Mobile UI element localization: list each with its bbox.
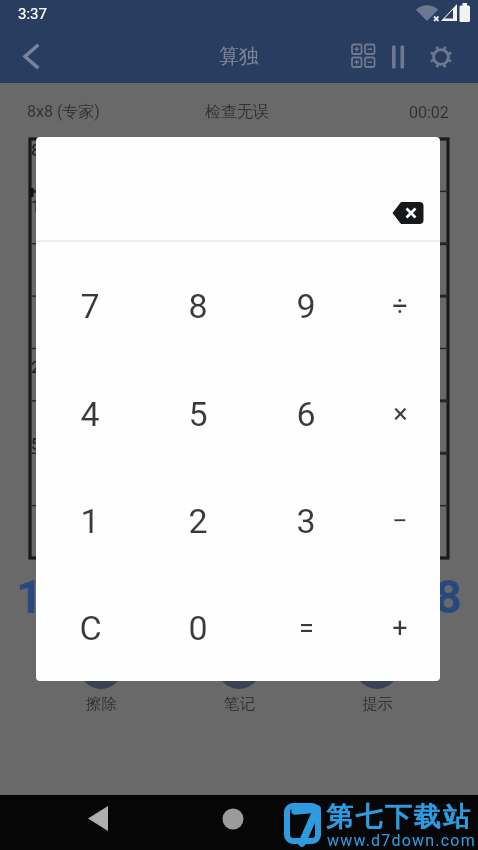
- button[interactable]: ×: [360, 360, 440, 467]
- button[interactable]: [350, 42, 378, 72]
- staticText: C: [79, 608, 102, 648]
- staticText: 提示: [362, 694, 393, 714]
- button[interactable]: [213, 795, 253, 843]
- staticText: 2: [31, 357, 41, 377]
- button[interactable]: [386, 42, 410, 72]
- staticText: 2: [76, 569, 103, 624]
- staticText: 7: [375, 569, 402, 624]
- staticText: ÷: [392, 290, 408, 322]
- button[interactable]: 1: [36, 467, 144, 574]
- button[interactable]: 5: [144, 360, 252, 467]
- staticText: 1: [16, 569, 43, 624]
- button[interactable]: [427, 43, 455, 71]
- staticText: 5: [188, 394, 208, 434]
- staticText: 1: [80, 501, 100, 541]
- button[interactable]: 0: [144, 574, 252, 681]
- staticText: 6: [296, 394, 316, 434]
- staticText: 4: [196, 569, 223, 624]
- staticText: 笔记: [224, 694, 255, 714]
- button[interactable]: 8: [144, 252, 252, 360]
- staticText: =: [299, 612, 314, 644]
- staticText: 8: [435, 569, 462, 624]
- button[interactable]: ÷: [360, 252, 440, 360]
- staticText: 擦除: [86, 694, 117, 714]
- staticText: 9: [296, 286, 316, 326]
- staticText: −: [392, 505, 408, 537]
- button[interactable]: 3: [252, 467, 360, 574]
- staticText: 3: [296, 501, 316, 541]
- button[interactable]: C: [36, 574, 144, 681]
- staticText: 8: [31, 140, 41, 160]
- button[interactable]: [390, 200, 426, 226]
- button[interactable]: 2: [144, 467, 252, 574]
- button[interactable]: [80, 798, 120, 846]
- staticText: 00:02: [409, 103, 449, 122]
- staticText: 0: [188, 608, 208, 648]
- staticText: 第七下载站: [325, 800, 471, 834]
- staticText: www.d7down.com: [327, 831, 476, 850]
- button[interactable]: 4: [36, 360, 144, 467]
- button[interactable]: 9: [252, 252, 360, 360]
- staticText: 7: [80, 286, 100, 326]
- staticText: 4: [80, 394, 100, 434]
- staticText: +: [392, 612, 408, 644]
- staticText: 8x8 (专家): [27, 102, 100, 122]
- staticText: 3:37: [18, 5, 47, 23]
- staticText: ×: [393, 398, 408, 430]
- staticText: 1: [31, 196, 41, 216]
- staticText: 检查无误: [205, 102, 269, 122]
- staticText: 8: [188, 286, 208, 326]
- staticText: 5: [31, 434, 41, 454]
- staticText: 2: [188, 501, 208, 541]
- button[interactable]: 6: [252, 360, 360, 467]
- staticText: 算独: [219, 44, 259, 69]
- button[interactable]: 7: [36, 252, 144, 360]
- button[interactable]: =: [252, 574, 360, 681]
- button[interactable]: +: [360, 574, 440, 681]
- button[interactable]: [14, 42, 48, 72]
- button[interactable]: −: [360, 467, 440, 574]
